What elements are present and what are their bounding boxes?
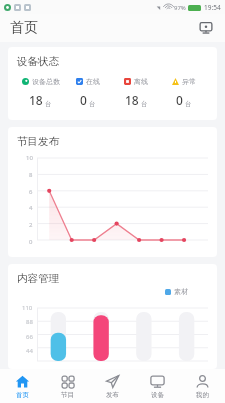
staticText: 110 bbox=[22, 304, 33, 312]
staticText: 19:54 bbox=[204, 3, 221, 12]
staticText: 我的 bbox=[196, 391, 209, 399]
staticText: 素材 bbox=[174, 287, 188, 296]
button[interactable]: 首页 bbox=[0, 369, 45, 403]
staticText: 离线 bbox=[134, 77, 148, 86]
staticText: 首页 bbox=[10, 19, 38, 37]
staticText: 6 bbox=[29, 188, 33, 196]
staticText: 97% bbox=[174, 4, 186, 12]
staticText: 异常 bbox=[182, 77, 196, 86]
button[interactable]: 节目 bbox=[45, 369, 90, 403]
staticText: 节目发布 bbox=[17, 135, 59, 148]
button[interactable]: 在线 bbox=[64, 77, 112, 108]
staticText: 4 bbox=[29, 204, 33, 212]
staticText: 88 bbox=[26, 318, 33, 326]
staticText: 44 bbox=[26, 347, 33, 355]
button[interactable]: 离线 bbox=[112, 77, 160, 108]
button[interactable]: Screen cast bbox=[195, 17, 217, 39]
staticText: 10 bbox=[26, 154, 33, 162]
button[interactable]: 发布 bbox=[90, 369, 135, 403]
staticText: 台 bbox=[89, 100, 96, 108]
staticText: 在线 bbox=[86, 77, 100, 86]
staticText: 节目 bbox=[61, 391, 74, 399]
staticText: 0 bbox=[80, 92, 87, 108]
staticText: 发布 bbox=[106, 391, 119, 399]
button[interactable]: 素材 bbox=[165, 287, 188, 296]
staticText: 设备 bbox=[151, 391, 164, 399]
staticText: 设备状态 bbox=[17, 55, 59, 68]
button[interactable]: 设备总数 bbox=[17, 77, 64, 108]
staticText: 首页 bbox=[16, 391, 29, 399]
staticText: 66 bbox=[26, 333, 33, 341]
staticText: 内容管理 bbox=[17, 272, 59, 285]
staticText: 8 bbox=[29, 171, 33, 179]
staticText: 0 bbox=[29, 238, 33, 246]
staticText: 台 bbox=[45, 100, 52, 108]
button[interactable]: 异常 bbox=[160, 77, 208, 108]
button[interactable]: 我的 bbox=[180, 369, 225, 403]
staticText: 18 bbox=[125, 92, 139, 108]
staticText: 设备总数 bbox=[32, 77, 60, 86]
staticText: 2 bbox=[29, 221, 33, 229]
staticText: 台 bbox=[185, 100, 192, 108]
staticText: 18 bbox=[29, 92, 43, 108]
button[interactable]: 设备 bbox=[135, 369, 180, 403]
staticText: 台 bbox=[141, 100, 148, 108]
staticText: 0 bbox=[176, 92, 183, 108]
